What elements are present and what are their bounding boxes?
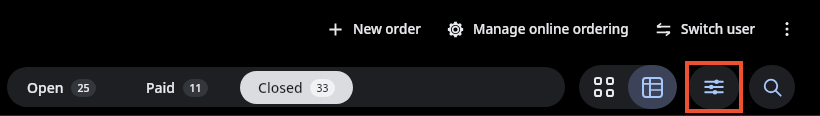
button[interactable]: Search — [749, 65, 795, 109]
staticText: 25 — [77, 81, 90, 95]
staticText: 11 — [189, 81, 202, 95]
button[interactable]: Table view — [628, 65, 677, 109]
staticText: Switch user — [681, 20, 756, 38]
staticText: Closed — [258, 78, 303, 97]
button[interactable]: Switch user — [649, 14, 762, 44]
button[interactable]: Paid — [140, 74, 214, 101]
button[interactable]: Closed — [240, 71, 353, 104]
button[interactable]: Filter — [689, 65, 739, 109]
staticText: Paid — [146, 78, 176, 97]
button[interactable]: Grid view — [579, 65, 628, 109]
staticText: Manage online ordering — [473, 20, 629, 38]
button[interactable]: Open — [21, 74, 102, 101]
staticText: Open — [27, 78, 64, 97]
button[interactable]: Manage online ordering — [441, 14, 635, 44]
button[interactable]: More options — [770, 12, 804, 46]
staticText: New order — [353, 20, 421, 38]
staticText: 33 — [316, 81, 329, 95]
button[interactable]: New order — [321, 14, 427, 44]
